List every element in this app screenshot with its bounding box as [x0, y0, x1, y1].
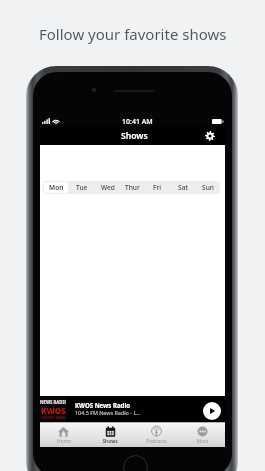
- staticText: Sun: [202, 183, 214, 192]
- staticText: 104.5FM·1240AM: [41, 416, 66, 420]
- button[interactable]: Sat: [170, 181, 195, 194]
- button[interactable]: Podcasts: [133, 422, 179, 447]
- staticText: Thur: [125, 183, 140, 192]
- button[interactable]: Wed: [95, 181, 120, 194]
- staticText: Mon: [49, 183, 64, 192]
- button[interactable]: More: [179, 422, 225, 447]
- staticText: Fri: [153, 183, 162, 192]
- button[interactable]: Shows: [40, 127, 225, 145]
- button[interactable]: Thur: [120, 181, 145, 194]
- staticText: KWOS: [41, 405, 66, 416]
- button[interactable]: NEWS RADIO: [40, 396, 225, 422]
- staticText: Follow your favorite shows: [39, 24, 227, 44]
- button[interactable]: Shows: [87, 422, 133, 447]
- staticText: Tue: [76, 183, 88, 192]
- staticText: KWOS News Radio: [75, 401, 131, 409]
- button[interactable]: Fri: [145, 181, 170, 194]
- button[interactable]: Settings: [203, 129, 217, 143]
- staticText: More: [196, 438, 209, 445]
- staticText: 104.5 FM News Radio - L...: [75, 409, 141, 416]
- button[interactable]: Sun: [195, 181, 220, 194]
- button[interactable]: Play: [203, 402, 221, 420]
- staticText: NEWS RADIO: [40, 399, 66, 405]
- button[interactable]: Home: [40, 422, 87, 447]
- staticText: Sat: [178, 183, 188, 192]
- staticText: Podcasts: [146, 438, 167, 445]
- button[interactable]: Home button: [123, 455, 148, 471]
- staticText: 10:41 AM: [122, 117, 153, 127]
- button[interactable]: Tue: [69, 181, 95, 194]
- staticText: Shows: [121, 130, 148, 142]
- staticText: Wed: [101, 183, 115, 192]
- staticText: Home: [57, 438, 71, 445]
- staticText: Shows: [102, 438, 118, 445]
- button[interactable]: Mon: [44, 182, 68, 193]
